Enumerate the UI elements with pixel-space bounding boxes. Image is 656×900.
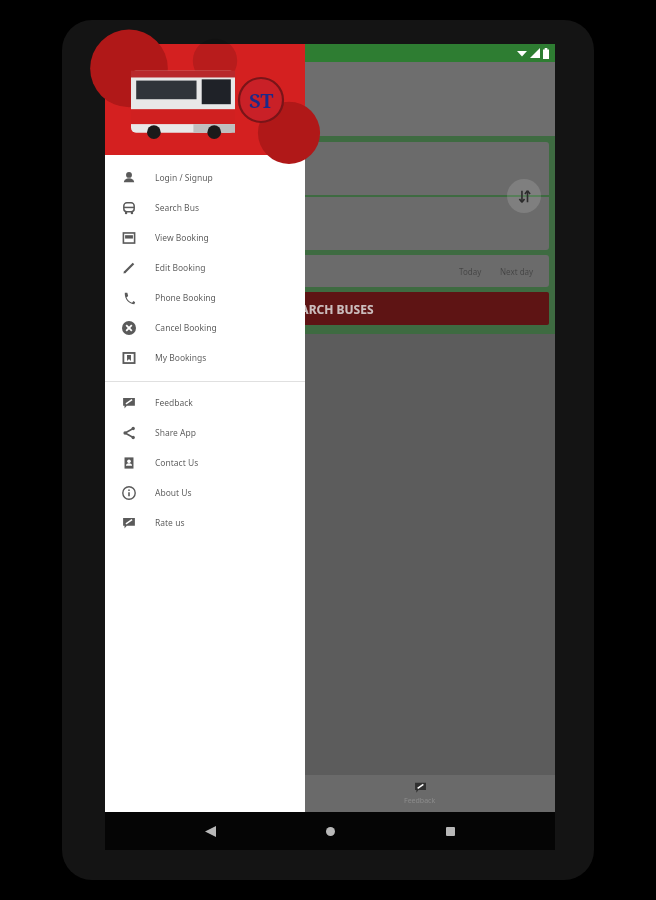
button[interactable]: Search Bus (105, 193, 305, 223)
button[interactable]: Share App (105, 418, 305, 448)
button[interactable]: Rate us (105, 508, 305, 538)
button[interactable]: Swap source and destination (507, 179, 541, 213)
button[interactable]: Today (454, 263, 487, 280)
button[interactable]: Phone Booking (105, 283, 305, 313)
button[interactable]: Next day (495, 263, 539, 280)
button[interactable]: Login / Signup (105, 163, 305, 193)
staticText: ST (124, 74, 141, 93)
button[interactable]: Feedback (105, 388, 305, 418)
staticText: Feedback (404, 796, 436, 806)
staticText: Edit Booking (155, 262, 206, 274)
staticText: SEARCH BUSES (287, 301, 374, 317)
button[interactable] (183, 104, 555, 136)
staticText: Login / Signup (155, 172, 213, 184)
staticText: Share App (155, 427, 196, 439)
staticText: Phone Booking (155, 292, 216, 304)
staticText: Today (459, 266, 482, 277)
staticText: My Bookings (155, 352, 207, 364)
button[interactable]: About Us (105, 478, 305, 508)
staticText: Cancel Booking (155, 322, 217, 334)
button[interactable]: View Booking (105, 223, 305, 253)
button[interactable]: Back (195, 816, 225, 846)
staticText: Rate us (155, 517, 185, 529)
staticText: View Booking (155, 232, 209, 244)
staticText: Bus Booking (120, 115, 168, 126)
button[interactable]: My Bookings (105, 343, 305, 373)
button[interactable]: Contact Us (105, 448, 305, 478)
staticText: Contact Us (155, 457, 199, 469)
staticText: Search Bus (155, 202, 199, 214)
staticText: About Us (155, 487, 192, 499)
staticText: Feedback (155, 397, 193, 409)
button[interactable]: Bus Booking (105, 104, 183, 136)
staticText: ST (249, 86, 274, 114)
staticText: Next day (500, 266, 534, 277)
button[interactable]: Recent apps (435, 816, 465, 846)
button[interactable]: Home (315, 816, 345, 846)
button[interactable]: SEARCH BUSES (111, 292, 549, 325)
button[interactable]: Edit Booking (105, 253, 305, 283)
button[interactable]: Feedback (375, 778, 465, 809)
button[interactable]: Cancel Booking (105, 313, 305, 343)
